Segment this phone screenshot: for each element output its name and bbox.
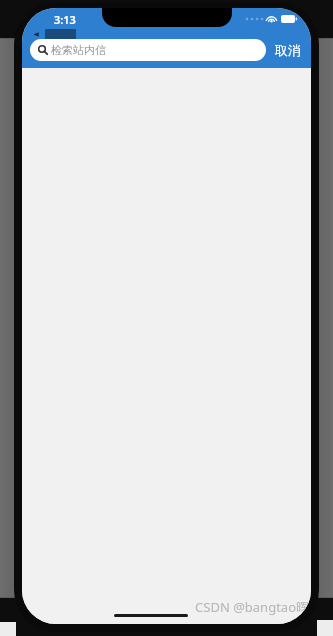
staticText: CSDN @bangtao晖 — [195, 598, 309, 616]
button[interactable]: 取消 — [273, 40, 303, 60]
staticText: 检索站内信 — [51, 43, 106, 57]
staticText: 取消 — [275, 42, 301, 58]
staticText: 3:13 — [54, 12, 76, 27]
button[interactable]: Back — [32, 29, 76, 40]
button[interactable]: 检索站内信 — [30, 39, 266, 61]
